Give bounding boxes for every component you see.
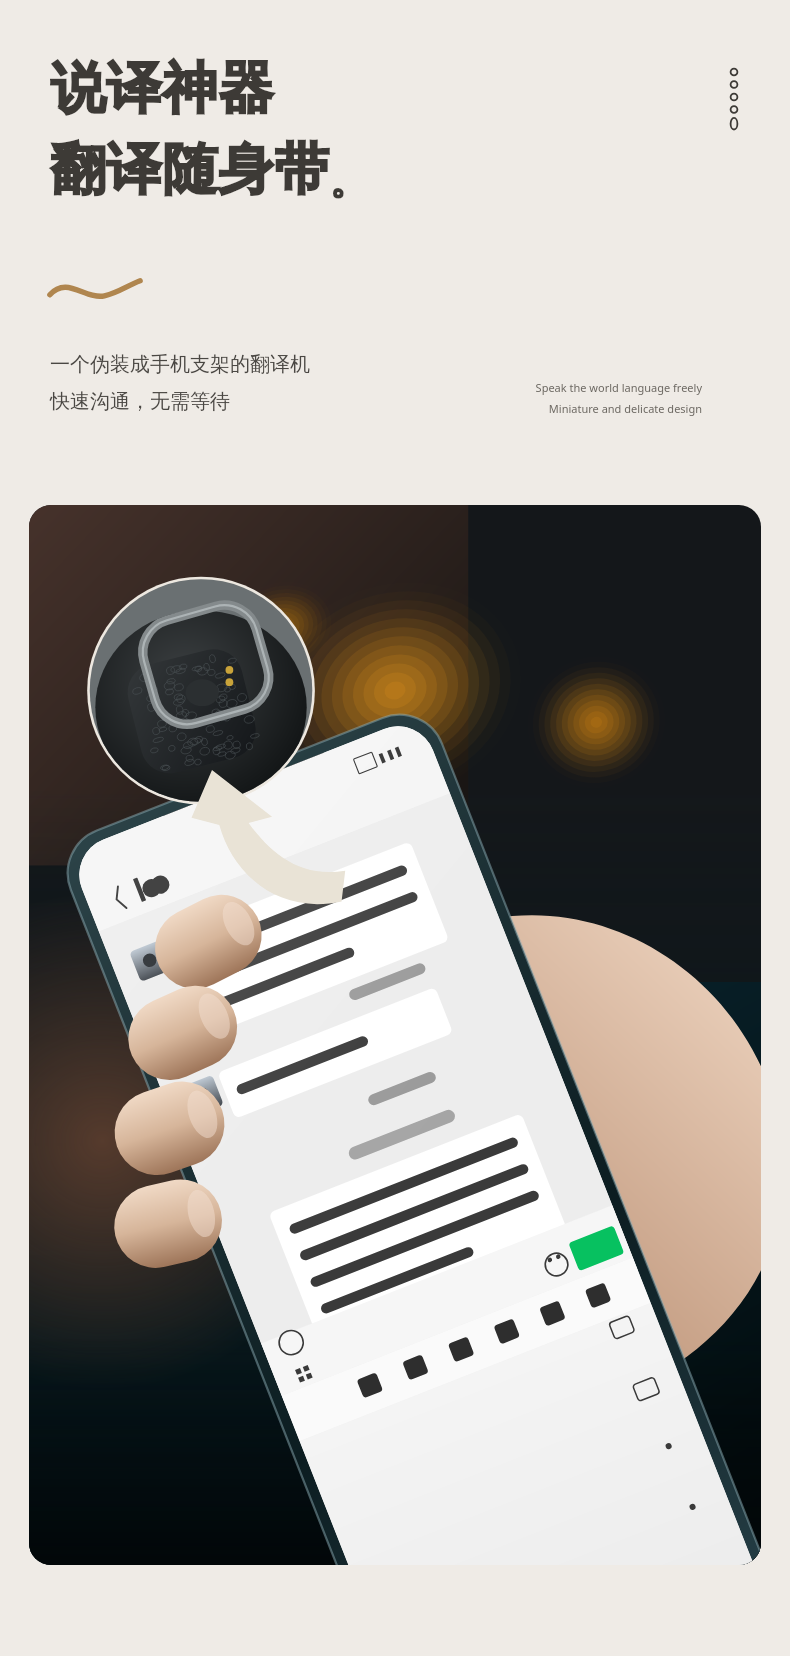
other: Decorative dots [720,62,748,136]
staticText: 翻译随身带 [50,135,330,204]
staticText: 说译神器 [50,54,274,123]
staticText: 。 [330,159,366,204]
staticText: Speak the world language freely [535,380,702,395]
staticText: 快速沟通，无需等待 [50,389,230,414]
staticText: Miniature and delicate design [548,401,702,416]
staticText: 一个伪装成手机支架的翻译机 [50,352,310,377]
button[interactable] [29,505,761,1565]
